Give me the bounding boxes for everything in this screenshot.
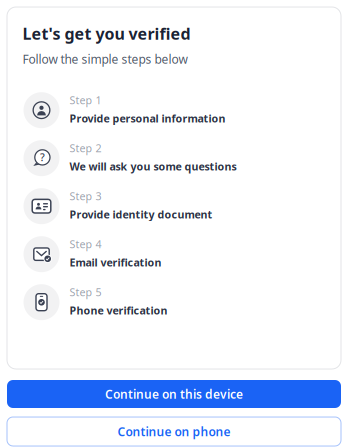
- staticText: Step 3: [69, 189, 101, 203]
- staticText: Continue on phone: [117, 423, 230, 439]
- staticText: Follow the simple steps below: [22, 51, 187, 67]
- staticText: Continue on this device: [105, 386, 243, 402]
- staticText: Step 1: [69, 93, 101, 107]
- staticText: Phone verification: [69, 303, 167, 317]
- staticText: Step 4: [69, 237, 101, 251]
- staticText: ?: [40, 150, 45, 164]
- staticText: We will ask you some questions: [69, 159, 236, 173]
- button[interactable]: Continue on phone: [7, 417, 341, 446]
- staticText: Provide identity document: [69, 207, 212, 221]
- staticText: Let's get you verified: [22, 23, 190, 44]
- staticText: Provide personal information: [69, 111, 225, 125]
- staticText: Step 5: [69, 285, 101, 299]
- staticText: Email verification: [69, 255, 161, 269]
- button[interactable]: Continue on this device: [7, 380, 341, 408]
- staticText: Step 2: [69, 141, 101, 155]
